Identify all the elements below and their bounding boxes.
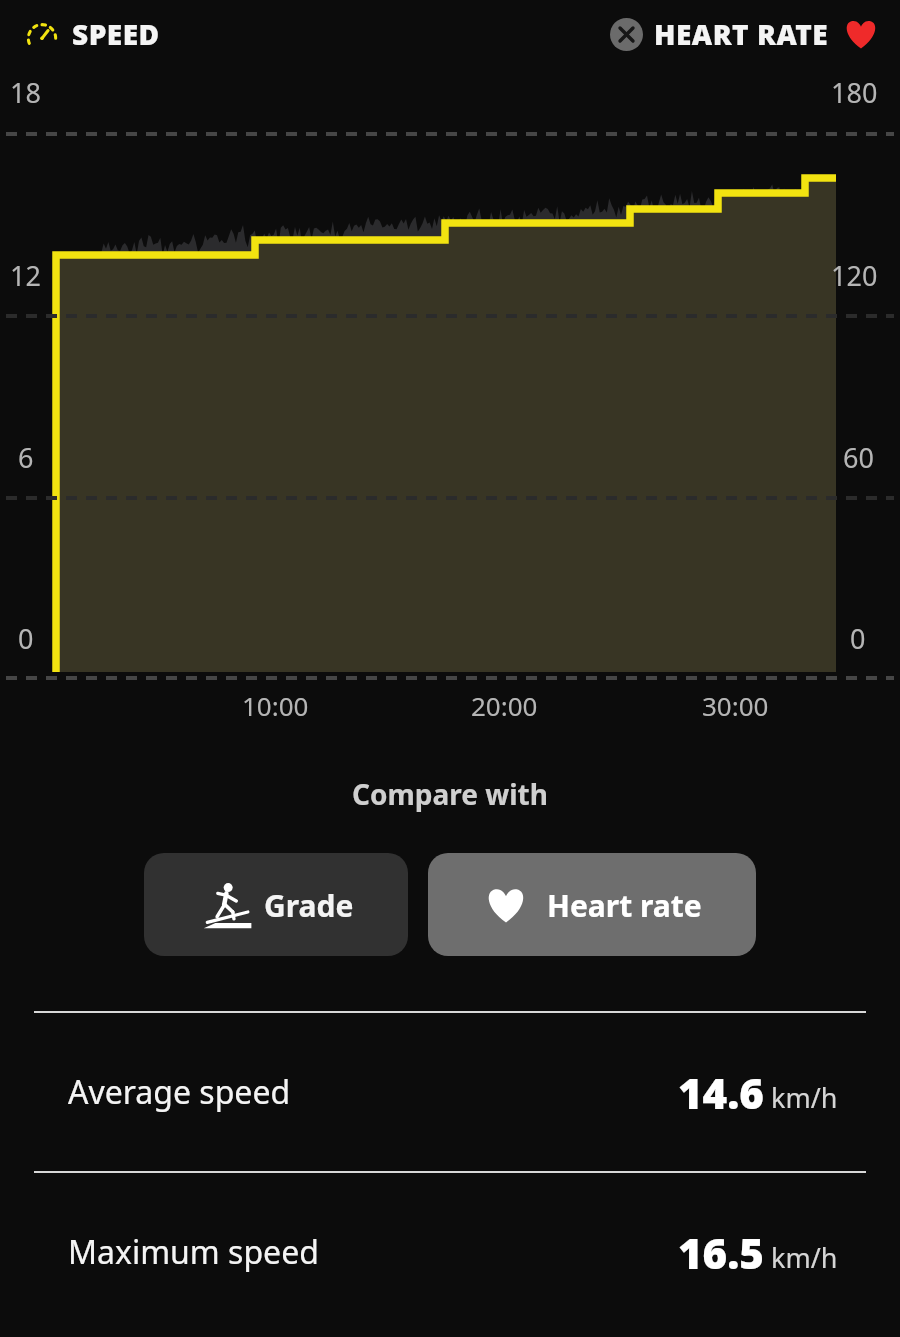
staticText: 0 xyxy=(850,620,866,657)
staticText: Maximum speed xyxy=(68,1230,319,1274)
staticText: 14.6 xyxy=(678,1064,764,1121)
staticText: 12 xyxy=(10,257,41,294)
staticText: Average speed xyxy=(68,1070,291,1114)
staticText: Compare with xyxy=(352,775,548,813)
staticText: HEART RATE xyxy=(654,15,829,53)
staticText: Grade xyxy=(264,885,354,926)
staticText: SPEED xyxy=(72,15,160,53)
other: Speed xyxy=(24,16,60,52)
staticText: 18 xyxy=(10,74,41,111)
button[interactable]: Maximum speed xyxy=(0,1173,900,1331)
button[interactable]: Grade xyxy=(144,853,408,956)
staticText: 16.5 xyxy=(678,1224,764,1281)
staticText: 6 xyxy=(18,439,34,476)
staticText: 60 xyxy=(843,439,874,476)
staticText: km/h xyxy=(771,1239,838,1276)
button[interactable]: Average speed xyxy=(0,1013,900,1171)
staticText: 10:00 xyxy=(242,688,309,723)
staticText: 20:00 xyxy=(471,688,538,723)
staticText: 30:00 xyxy=(702,688,769,723)
staticText: 0 xyxy=(18,620,34,657)
button[interactable]: Heart rate xyxy=(428,853,756,956)
staticText: 180 xyxy=(831,74,878,111)
button[interactable]: Remove heart rate xyxy=(610,15,880,53)
staticText: km/h xyxy=(771,1079,838,1116)
other: Remove heart rate xyxy=(610,18,643,51)
button[interactable]: Speed xyxy=(24,15,160,53)
staticText: 120 xyxy=(831,257,878,294)
staticText: Heart rate xyxy=(547,885,702,926)
